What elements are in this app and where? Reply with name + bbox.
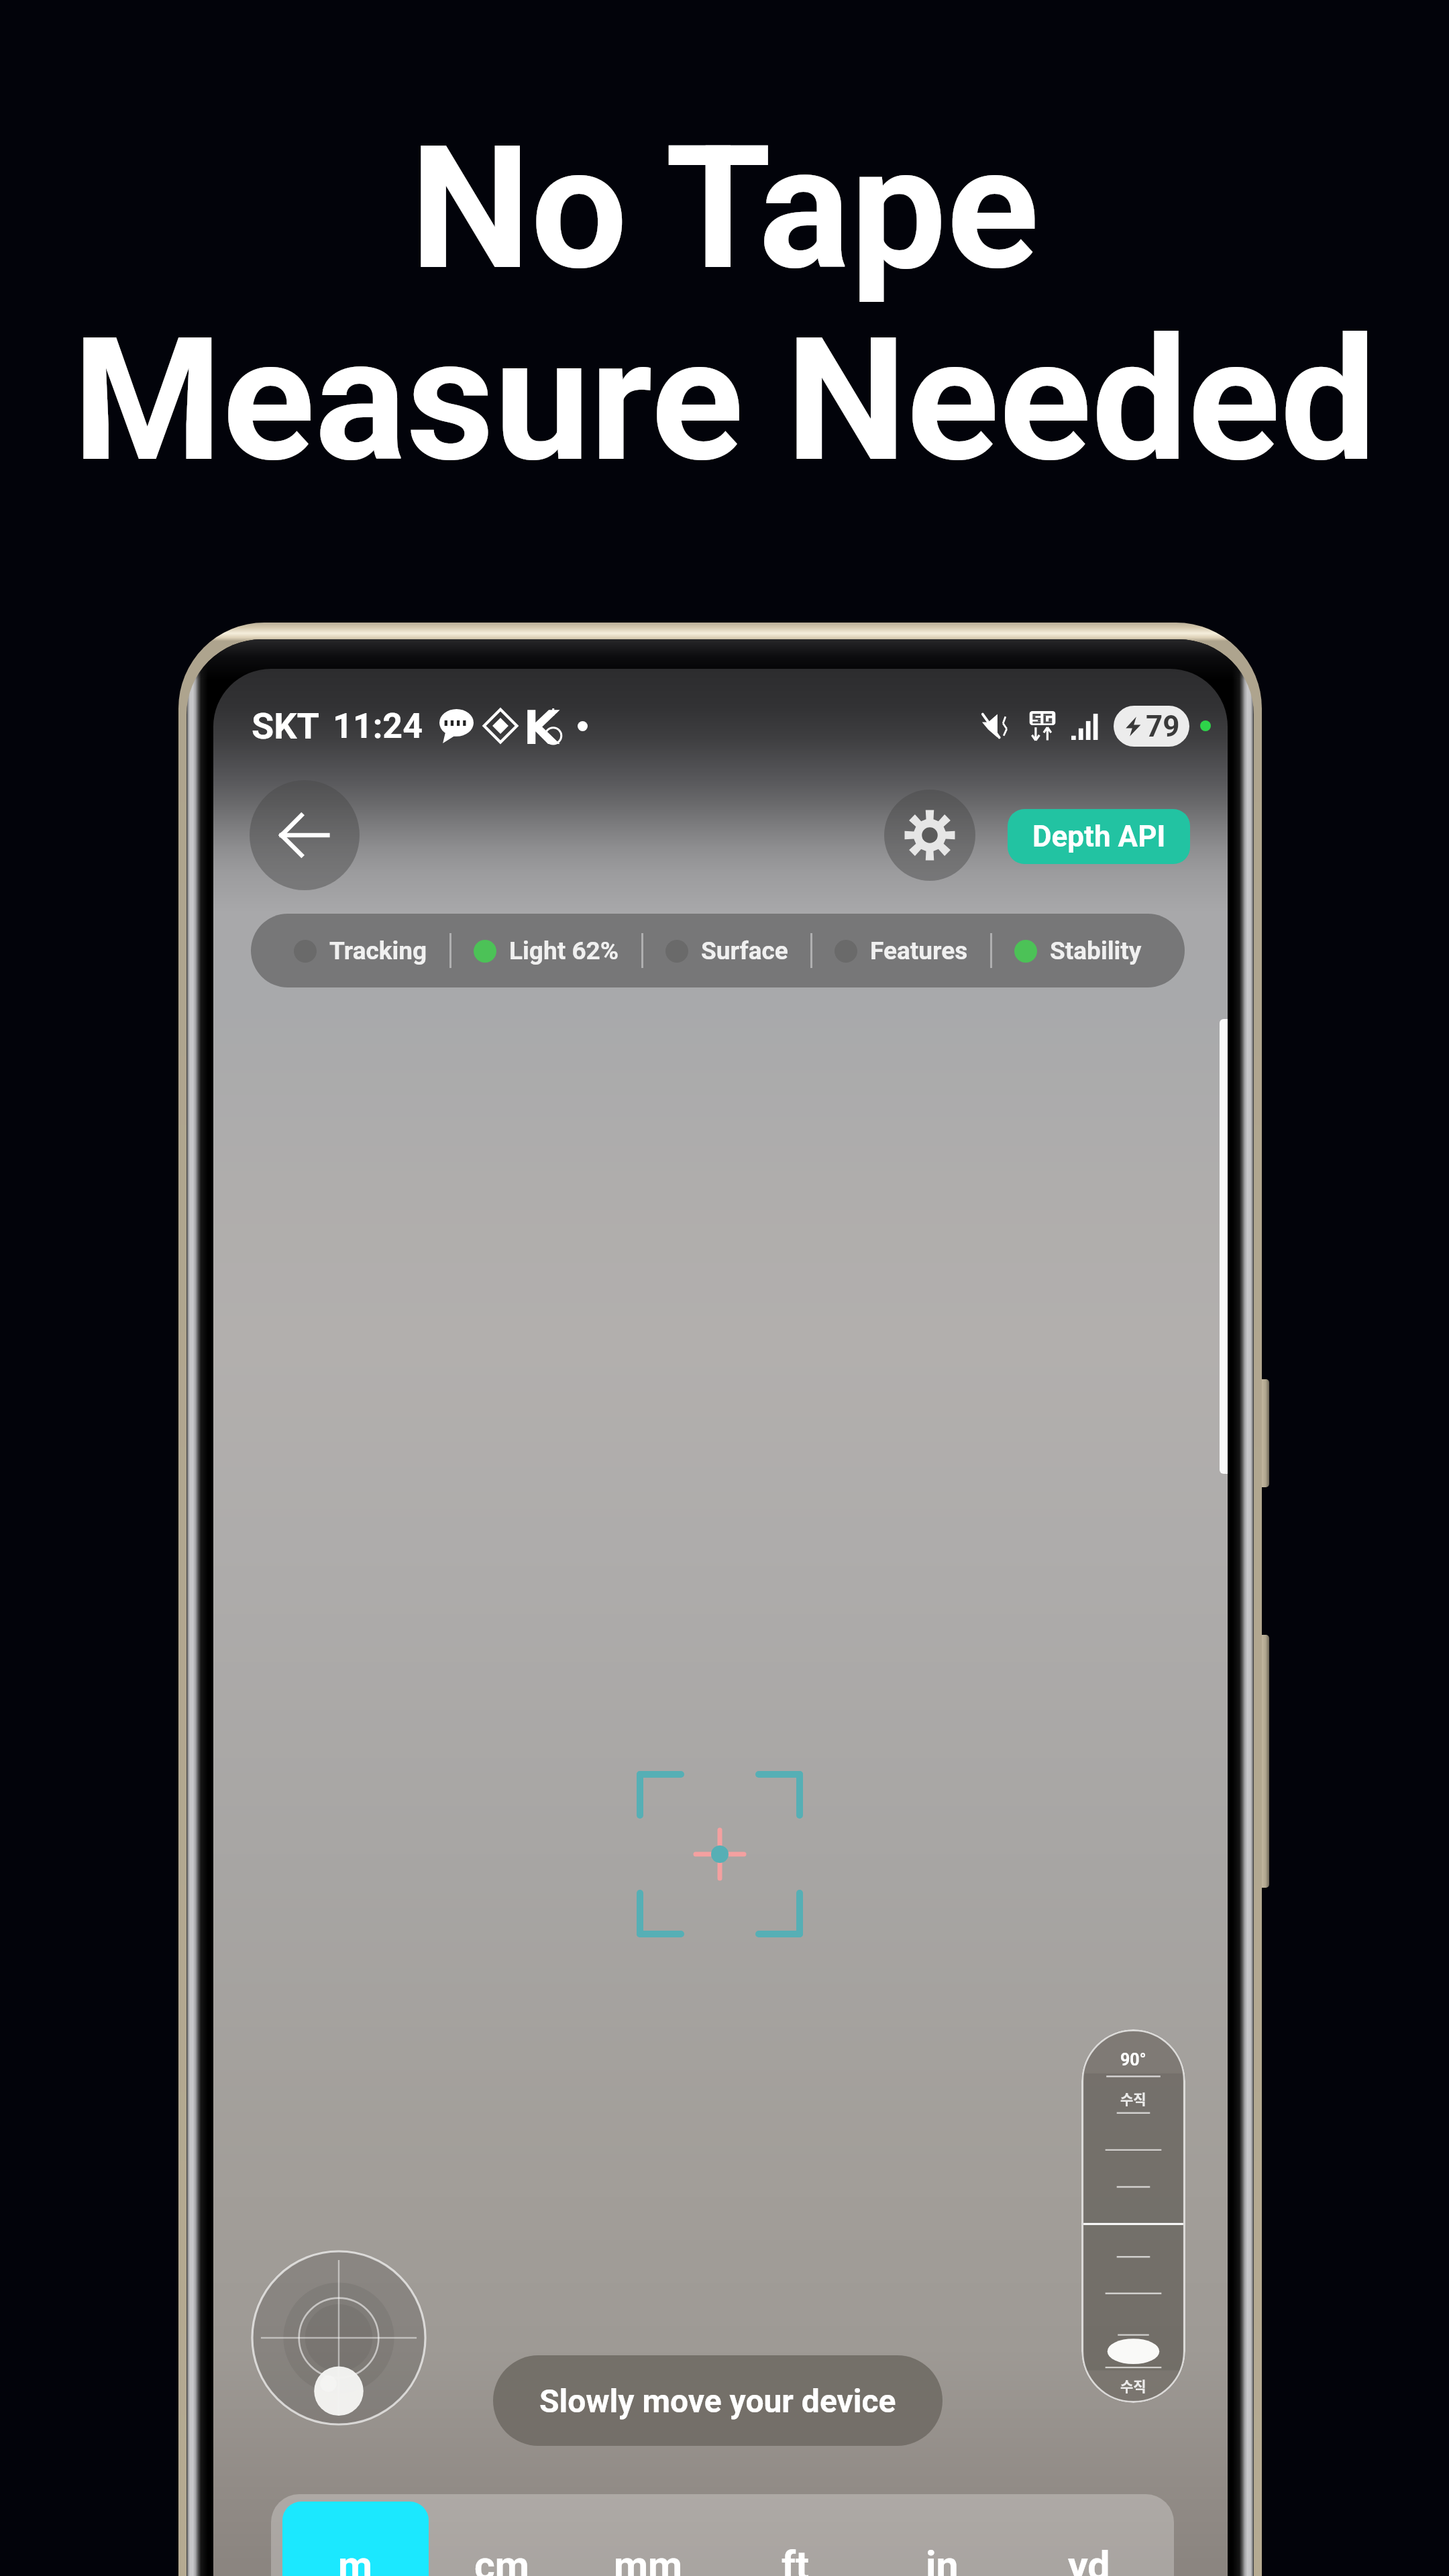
staticText: m <box>338 2542 373 2576</box>
staticText: cm <box>474 2542 529 2576</box>
button[interactable]: ft <box>722 2502 869 2576</box>
button[interactable]: Features <box>835 936 968 965</box>
button[interactable]: Settings <box>884 790 975 881</box>
button[interactable]: Stability <box>1014 936 1142 965</box>
staticText: Stability <box>1050 936 1142 965</box>
staticText: Depth API <box>1032 819 1166 854</box>
staticText: 수직 <box>1120 2375 1146 2396</box>
button[interactable]: Tracking <box>294 936 427 965</box>
staticText: Tracking <box>329 936 427 965</box>
staticText: No Tape Measure Needed <box>0 108 1449 500</box>
staticText: in <box>926 2542 959 2576</box>
staticText: 수직 <box>1120 2088 1146 2108</box>
staticText: Slowly move your device <box>539 2382 896 2420</box>
staticText: mm <box>614 2542 683 2576</box>
button[interactable]: Light 62% <box>474 936 619 965</box>
other: Level indicator <box>250 2249 428 2427</box>
button[interactable]: Depth API <box>1008 809 1190 864</box>
staticText: Surface <box>701 936 788 965</box>
staticText: Features <box>870 936 968 965</box>
staticText: 11:24 <box>333 706 423 747</box>
staticText: ft <box>782 2542 810 2576</box>
button[interactable]: mm <box>575 2502 722 2576</box>
button[interactable]: m <box>282 2502 429 2576</box>
button[interactable]: yd <box>1016 2502 1163 2576</box>
staticText: Light 62% <box>509 936 619 965</box>
button[interactable]: Surface <box>665 936 788 965</box>
button[interactable]: in <box>869 2502 1016 2576</box>
staticText: 90° <box>1120 2050 1146 2070</box>
staticText: 79 <box>1146 709 1180 744</box>
staticText: yd <box>1068 2542 1110 2576</box>
button[interactable]: Back <box>250 780 360 890</box>
staticText: SKT <box>252 705 320 747</box>
button[interactable]: cm <box>429 2502 575 2576</box>
